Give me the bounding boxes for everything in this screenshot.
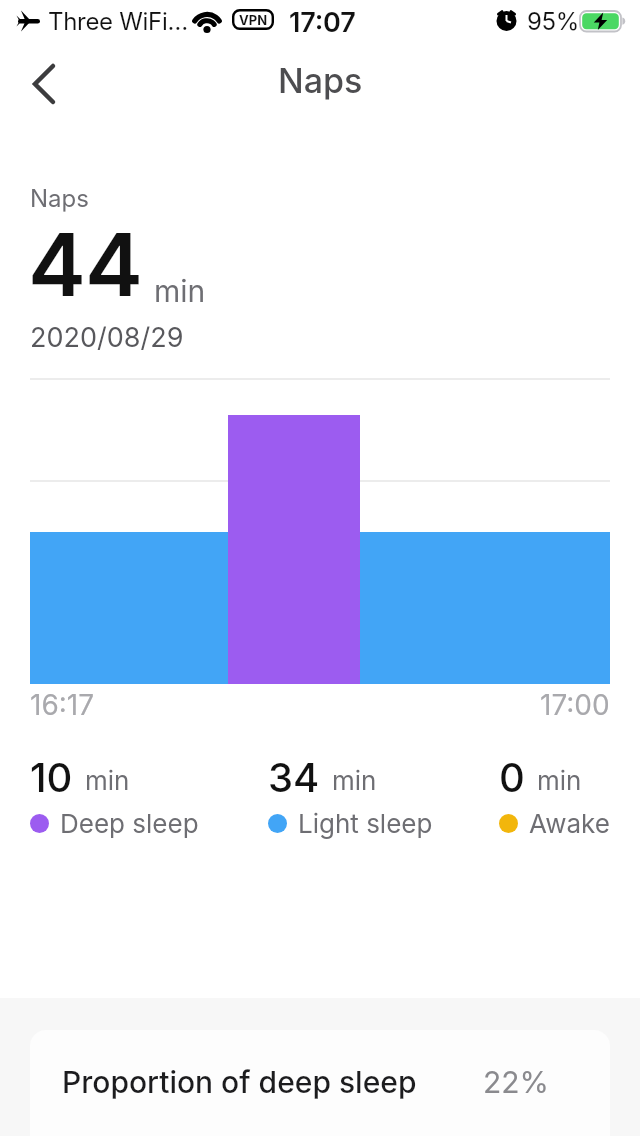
staticText: Awake bbox=[529, 808, 610, 839]
staticText: 22% bbox=[483, 1064, 550, 1100]
staticText: 2020/08/29 bbox=[30, 321, 184, 354]
staticText: 17:07 bbox=[289, 6, 356, 39]
staticText: 0 bbox=[499, 753, 525, 801]
staticText: min bbox=[537, 765, 582, 796]
staticText: 34 bbox=[268, 753, 320, 801]
staticText: Deep sleep bbox=[60, 808, 199, 839]
staticText: min bbox=[332, 765, 377, 796]
staticText: Naps bbox=[30, 184, 89, 213]
staticText: 44 bbox=[28, 212, 142, 317]
staticText: Light sleep bbox=[298, 808, 433, 839]
staticText: min bbox=[85, 765, 130, 796]
button[interactable] bbox=[16, 56, 72, 112]
staticText: 95% bbox=[527, 7, 580, 36]
staticText: 16:17 bbox=[30, 688, 95, 722]
staticText: 17:00 bbox=[540, 688, 610, 722]
button[interactable]: Proportion of deep sleep bbox=[30, 1030, 610, 1136]
staticText: min bbox=[154, 273, 206, 309]
staticText: VPN bbox=[239, 12, 268, 28]
staticText: Proportion of deep sleep bbox=[62, 1064, 417, 1100]
staticText: Naps bbox=[278, 60, 363, 101]
staticText: 10 bbox=[30, 753, 73, 801]
staticText: Three WiFi… bbox=[48, 7, 188, 36]
